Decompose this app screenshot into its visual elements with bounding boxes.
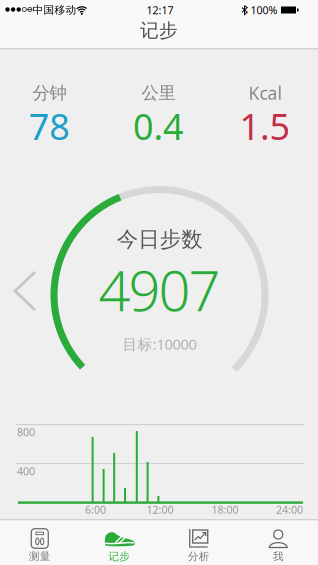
staticText: 公里 <box>141 82 175 104</box>
staticText: 今日步数 <box>117 226 202 253</box>
staticText: 记步 <box>140 19 178 42</box>
staticText: 0.4 <box>133 102 184 150</box>
button[interactable]: 记步 <box>79 520 159 565</box>
staticText: 目标:10000 <box>122 334 196 354</box>
staticText: 分析 <box>188 550 210 563</box>
staticText: 1.5 <box>239 102 290 150</box>
staticText: 100% <box>250 3 277 17</box>
button[interactable]: 测量 <box>0 520 79 565</box>
button[interactable]: 前一天 <box>12 262 38 320</box>
staticText: 12:17 <box>146 3 173 17</box>
staticText: 我 <box>273 550 284 563</box>
staticText: 记步 <box>108 550 130 563</box>
staticText: 78 <box>29 102 70 150</box>
staticText: 6:00 <box>85 502 106 517</box>
staticText: 400 <box>17 464 35 478</box>
staticText: Kcal <box>248 81 281 104</box>
staticText: 24:00 <box>276 502 303 517</box>
staticText: 18:00 <box>211 502 238 517</box>
staticText: 中国移动 <box>32 3 76 16</box>
staticText: 12:00 <box>146 502 173 517</box>
staticText: 测量 <box>29 550 51 563</box>
button[interactable]: 分析 <box>159 520 238 565</box>
button[interactable]: 我 <box>238 520 318 565</box>
staticText: 4907 <box>98 252 220 327</box>
staticText: 800 <box>17 425 35 439</box>
staticText: 分钟 <box>32 82 66 104</box>
